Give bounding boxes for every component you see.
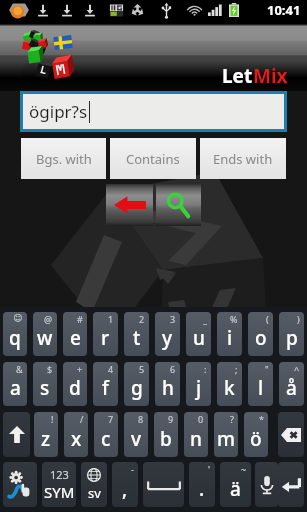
button[interactable]: ? xyxy=(214,412,238,457)
button[interactable]: + xyxy=(63,362,87,406)
staticText: 3 xyxy=(170,313,176,325)
staticText: 10:41 xyxy=(267,1,301,19)
button[interactable]: 1 xyxy=(93,312,118,356)
staticText: # xyxy=(77,313,83,325)
staticText: r xyxy=(101,325,110,351)
button[interactable]: & xyxy=(3,362,27,406)
button[interactable]: @ xyxy=(33,312,57,356)
staticText: _ xyxy=(203,313,207,325)
button[interactable]: " xyxy=(248,362,273,406)
button[interactable]: 9 xyxy=(154,412,178,457)
staticText: : xyxy=(204,363,207,375)
staticText: ☺ xyxy=(13,313,23,323)
button[interactable]: Back xyxy=(106,184,153,226)
staticText: n xyxy=(190,426,202,452)
button[interactable]: Bgs. with xyxy=(21,138,106,179)
staticText: y xyxy=(162,325,173,351)
staticText: 9 xyxy=(168,413,174,425)
staticText: 7 xyxy=(108,413,114,425)
staticText: 123 xyxy=(50,467,69,482)
staticText: å xyxy=(286,375,297,401)
staticText: ( xyxy=(266,313,269,325)
staticText: e xyxy=(70,325,81,351)
staticText: x xyxy=(71,426,82,452)
button[interactable]: Language xyxy=(81,462,107,507)
button[interactable]: Enter xyxy=(278,462,304,507)
staticText: s xyxy=(40,375,50,401)
other: Shift xyxy=(9,426,25,443)
staticText: j xyxy=(196,375,202,401)
button[interactable]: 5 xyxy=(124,362,149,406)
button[interactable]: Backspace xyxy=(278,412,304,457)
staticText: k xyxy=(224,375,235,401)
staticText: Mix xyxy=(253,63,288,89)
staticText: , xyxy=(122,476,128,502)
button[interactable]: - xyxy=(112,462,138,507)
button[interactable]: : xyxy=(186,362,211,406)
staticText: a xyxy=(10,375,21,401)
staticText: * xyxy=(259,413,264,425)
button[interactable]: Space xyxy=(143,462,184,507)
staticText: p xyxy=(286,325,298,351)
button[interactable]: ☺ xyxy=(3,312,27,356)
staticText: 6 xyxy=(170,363,176,375)
staticText: ögipr?s xyxy=(29,100,88,123)
button[interactable]: ( xyxy=(248,312,273,356)
button[interactable]: Voice input xyxy=(255,462,278,507)
staticText: 4 xyxy=(108,363,114,375)
button[interactable]: 6 xyxy=(155,362,180,406)
staticText: - xyxy=(131,463,134,475)
staticText: ^ xyxy=(294,363,300,375)
button[interactable]: ' xyxy=(189,462,215,507)
button[interactable]: ! xyxy=(34,412,58,457)
button[interactable]: Ends with xyxy=(200,138,286,179)
button[interactable]: ) xyxy=(279,312,304,356)
button[interactable]: 8 xyxy=(124,412,148,457)
staticText: g xyxy=(131,375,143,401)
staticText: " xyxy=(265,363,269,375)
staticText: ; xyxy=(235,363,238,375)
staticText: w xyxy=(37,325,53,351)
staticText: & xyxy=(16,363,23,375)
button[interactable]: 0 xyxy=(184,412,208,457)
staticText: ' xyxy=(208,463,211,475)
staticText: Contains xyxy=(126,150,180,168)
button[interactable]: Search xyxy=(156,184,201,226)
button[interactable]: / xyxy=(64,412,88,457)
staticText: t xyxy=(133,325,141,351)
button[interactable]: 2 xyxy=(124,312,149,356)
staticText: l xyxy=(258,375,264,401)
button[interactable]: % xyxy=(217,312,242,356)
staticText: / xyxy=(80,413,84,425)
button[interactable]: Symbols xyxy=(42,462,76,507)
button[interactable]: $ xyxy=(33,362,57,406)
button[interactable]: Shift xyxy=(3,412,30,457)
button[interactable]: ; xyxy=(217,362,242,406)
staticText: sv xyxy=(88,484,101,502)
button[interactable]: ~ xyxy=(220,462,251,507)
button[interactable]: # xyxy=(63,312,87,356)
staticText: 5 xyxy=(139,363,145,375)
button[interactable]: 3 xyxy=(155,312,180,356)
button[interactable]: 4 xyxy=(93,362,118,406)
staticText: m xyxy=(217,426,235,452)
staticText: f xyxy=(102,375,109,401)
button[interactable]: ^ xyxy=(279,362,304,406)
button[interactable]: _ xyxy=(186,312,211,356)
staticText: $ xyxy=(47,363,53,375)
staticText: + xyxy=(77,363,83,375)
button[interactable]: ögipr?s xyxy=(23,94,284,129)
staticText: % xyxy=(230,313,238,325)
button[interactable]: 7 xyxy=(94,412,118,457)
staticText: 0 xyxy=(198,413,204,425)
staticText: h xyxy=(162,375,174,401)
staticText: 2 xyxy=(139,313,145,325)
staticText: c xyxy=(101,426,111,452)
button[interactable]: Settings xyxy=(3,462,37,507)
button[interactable]: Contains xyxy=(110,138,196,179)
staticText: Ends with xyxy=(213,150,273,168)
staticText: Bgs. with xyxy=(36,150,92,168)
staticText: d xyxy=(69,375,81,401)
staticText: ~ xyxy=(241,463,247,475)
button[interactable]: * xyxy=(244,412,268,457)
